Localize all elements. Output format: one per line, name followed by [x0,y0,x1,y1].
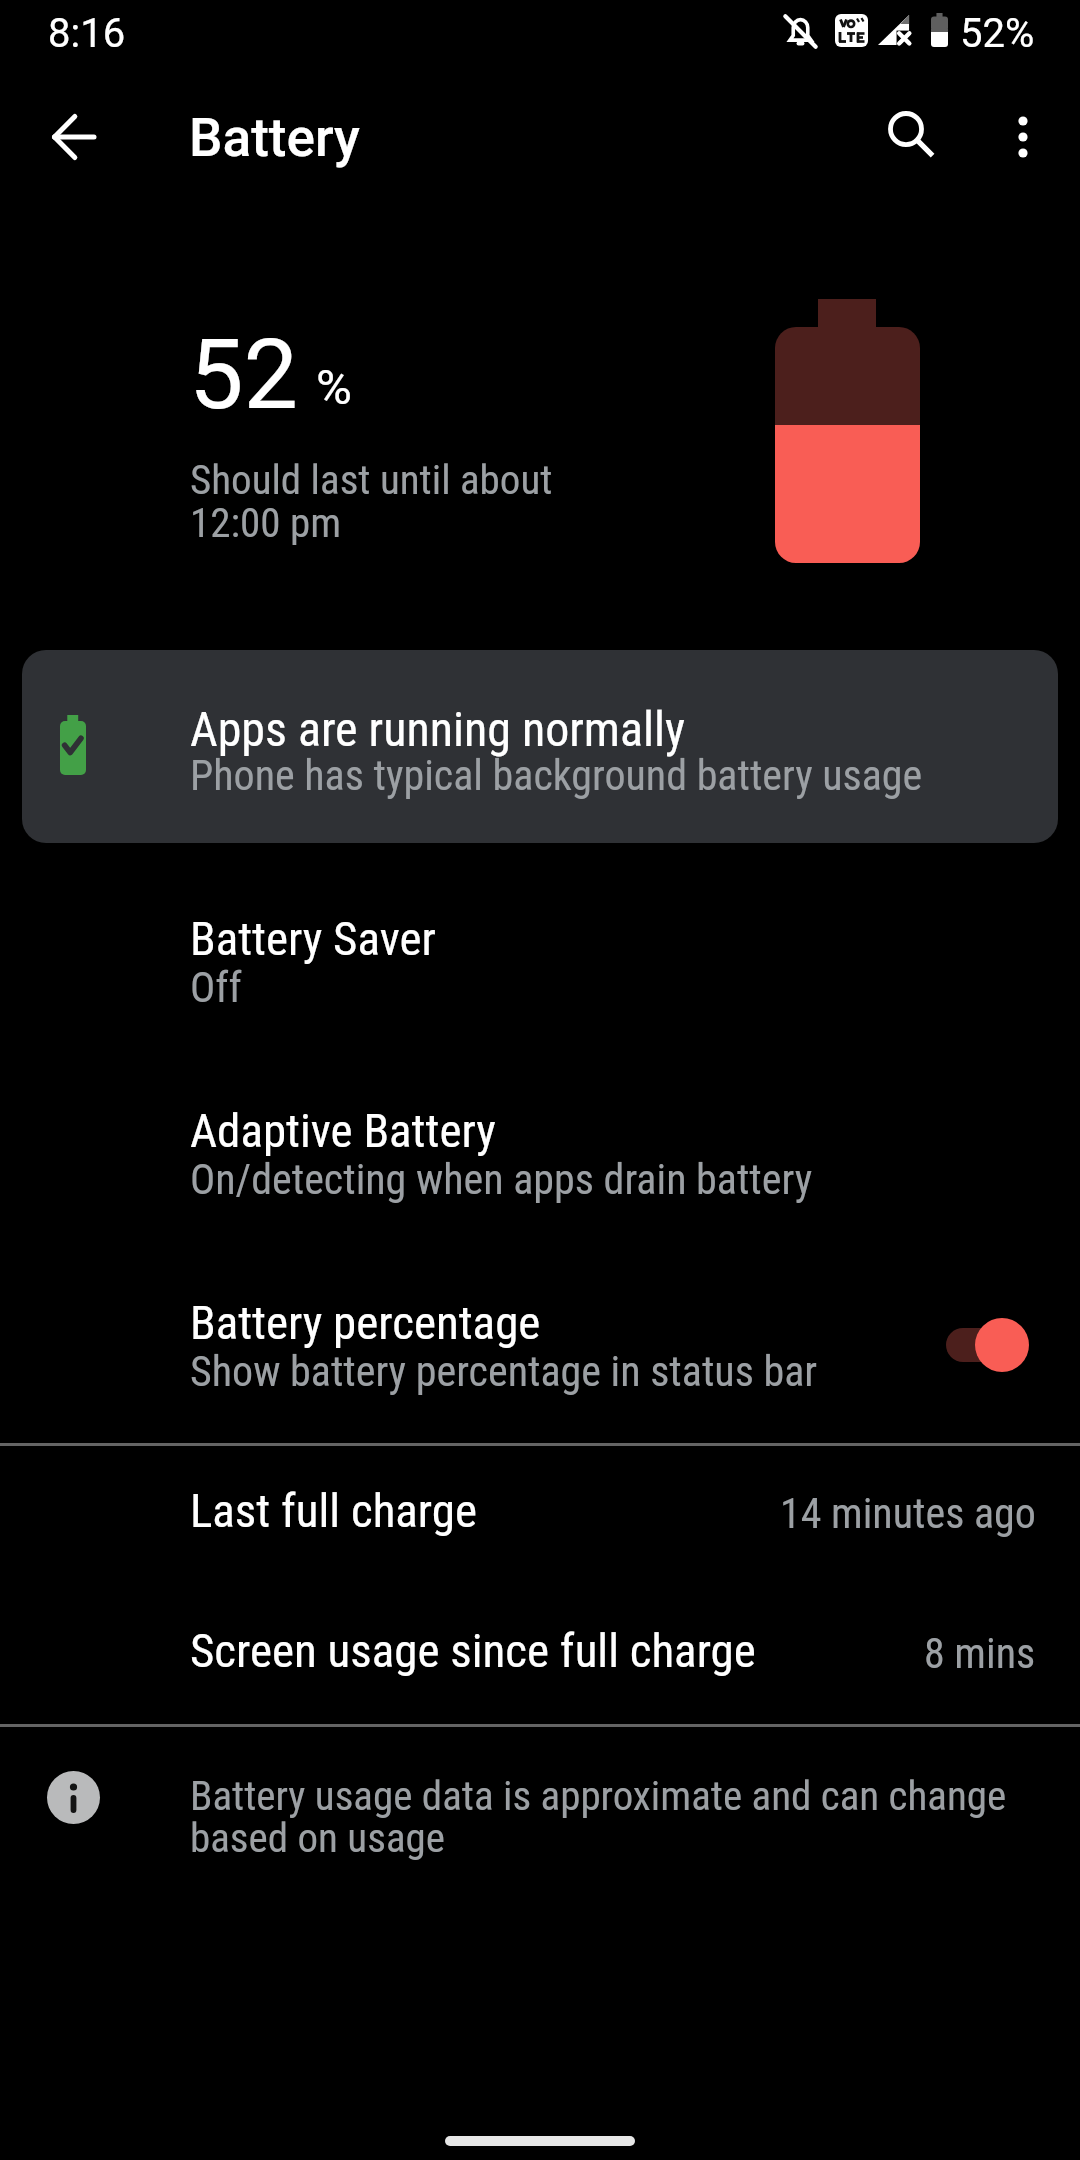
staticText: Phone has typical background battery usa… [190,751,923,800]
button[interactable]: Adaptive Battery [0,1072,1080,1264]
button[interactable]: Apps are running normally [22,650,1058,843]
button[interactable]: Last full charge [0,1447,1080,1587]
button[interactable] [28,91,120,183]
staticText: Adaptive Battery [190,1103,496,1158]
staticText: 14 minutes ago [780,1489,1036,1538]
button[interactable]: Screen usage since full charge [0,1587,1080,1727]
staticText: Battery [189,107,360,169]
staticText: Off [190,963,242,1012]
button[interactable] [864,87,956,179]
button[interactable]: Battery percentage [0,1264,1080,1444]
staticText: based on usage [190,1814,445,1862]
staticText: Show battery percentage in status bar [190,1347,818,1396]
button[interactable] [977,91,1068,182]
staticText: % [316,359,352,416]
staticText: Should last until about [190,456,553,504]
staticText: 8 mins [924,1629,1036,1678]
staticText: Battery usage data is approximate and ca… [190,1772,1007,1820]
staticText: Screen usage since full charge [190,1623,756,1678]
button[interactable]: Battery Saver [0,880,1080,1072]
staticText: 8:16 [48,10,126,57]
staticText: Battery percentage [190,1295,541,1350]
staticText: 52 [189,318,299,432]
staticText: On/detecting when apps drain battery [190,1155,813,1204]
staticText: 12:00 pm [190,499,342,547]
staticText: Apps are running normally [190,701,686,757]
staticText: 52% [960,10,1035,57]
staticText: Last full charge [190,1483,477,1538]
staticText: Battery Saver [190,911,436,966]
